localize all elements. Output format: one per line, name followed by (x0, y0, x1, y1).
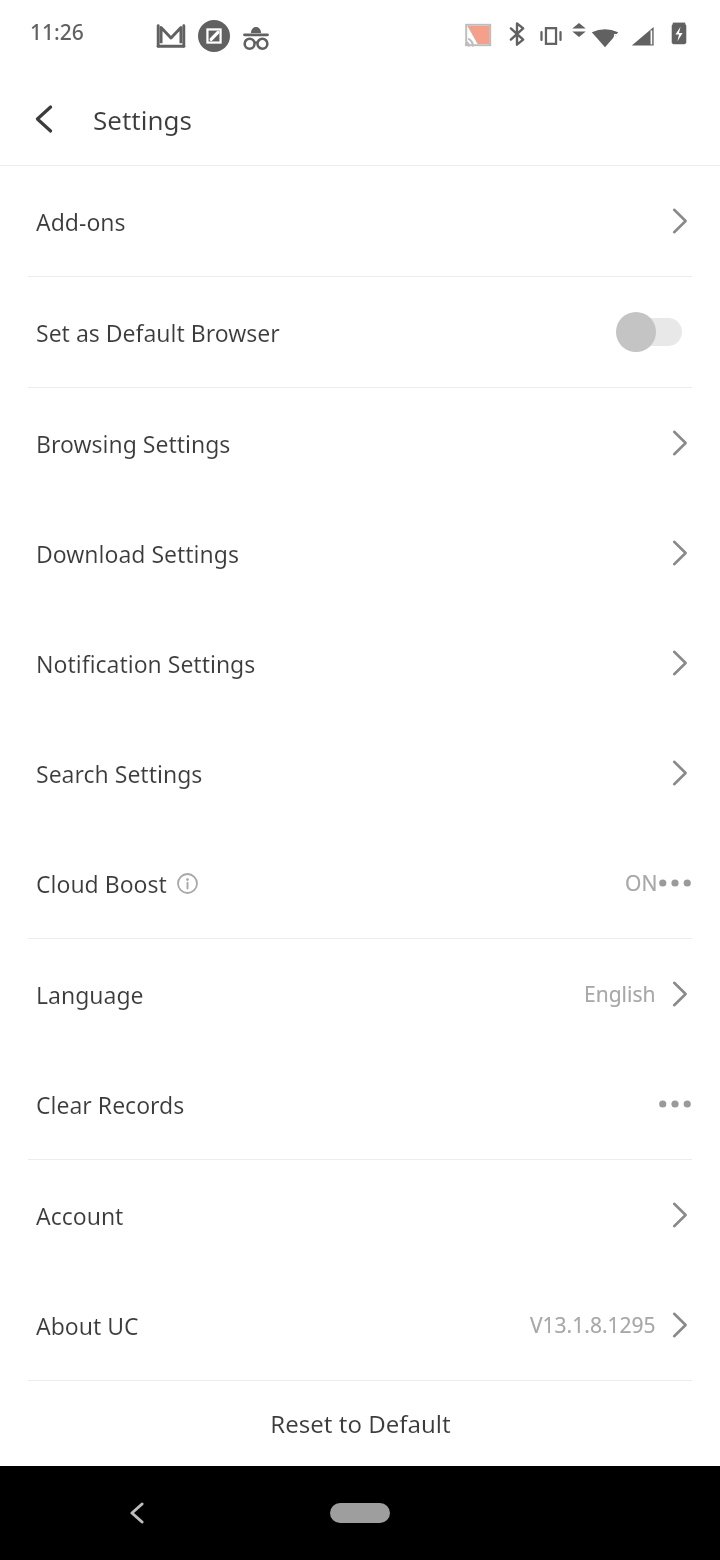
button[interactable]: Clear Records (0, 1049, 720, 1159)
button[interactable]: Cloud Boost (0, 828, 720, 938)
button[interactable]: Browsing Settings (0, 388, 720, 498)
staticText: Set as Default Browser (36, 317, 280, 348)
button[interactable]: Download Settings (0, 498, 720, 608)
staticText: Add-ons (36, 206, 126, 237)
button[interactable]: Back (14, 89, 74, 149)
button[interactable]: Add-ons (0, 166, 720, 276)
staticText: Language (36, 979, 144, 1010)
button[interactable]: Notification Settings (0, 608, 720, 718)
staticText: Settings (93, 102, 192, 137)
staticText: Notification Settings (36, 648, 256, 679)
staticText: About UC (36, 1310, 139, 1341)
button[interactable]: Back (107, 1483, 167, 1543)
staticText: Account (36, 1200, 124, 1231)
staticText: ON (625, 869, 658, 898)
staticText: Browsing Settings (36, 428, 231, 459)
staticText: V13.1.8.1295 (530, 1311, 656, 1340)
staticText: 5 (613, 30, 620, 45)
staticText: Download Settings (36, 538, 239, 569)
button[interactable]: Reset to Default (0, 1381, 720, 1466)
staticText: Search Settings (36, 758, 203, 789)
button[interactable]: Language (0, 939, 720, 1049)
staticText: 11:26 (30, 18, 84, 47)
staticText: Cloud Boost (36, 868, 167, 899)
button[interactable]: Account (0, 1160, 720, 1270)
staticText: English (584, 980, 656, 1009)
button[interactable]: Search Settings (0, 718, 720, 828)
button[interactable]: Home (330, 1503, 390, 1523)
staticText: Clear Records (36, 1089, 185, 1120)
staticText: Reset to Default (270, 1407, 451, 1440)
button[interactable]: Set as Default Browser (0, 277, 720, 387)
button[interactable]: About UC (0, 1270, 720, 1380)
